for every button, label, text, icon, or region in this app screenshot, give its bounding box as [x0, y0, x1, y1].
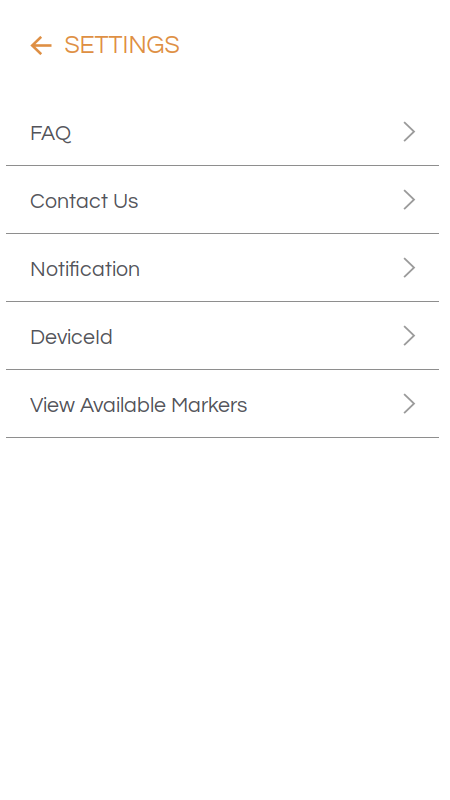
button[interactable]: Notification: [0, 234, 450, 302]
staticText: DeviceId: [30, 326, 113, 348]
button[interactable]: Back: [25, 26, 59, 65]
staticText: Notification: [30, 258, 140, 280]
button[interactable]: Contact Us: [0, 166, 450, 234]
button[interactable]: View Available Markers: [0, 370, 450, 438]
staticText: Contact Us: [30, 190, 138, 212]
button[interactable]: DeviceId: [0, 302, 450, 370]
button[interactable]: FAQ: [0, 98, 450, 166]
staticText: View Available Markers: [30, 394, 247, 416]
staticText: FAQ: [30, 122, 71, 144]
staticText: SETTINGS: [64, 33, 179, 58]
